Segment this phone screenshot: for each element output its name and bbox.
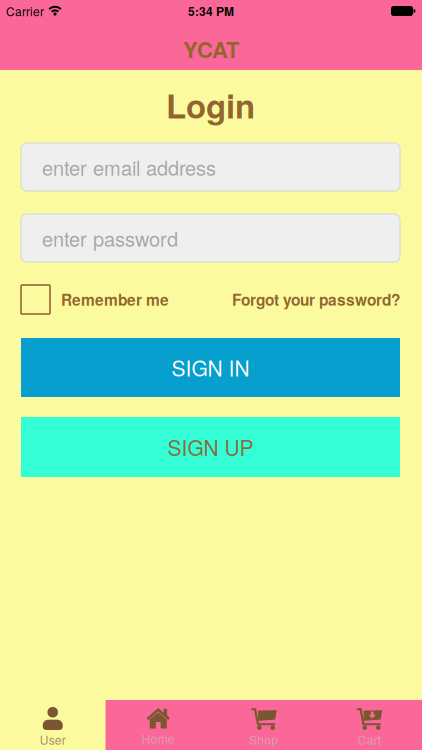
button[interactable]: Shop bbox=[211, 700, 316, 750]
button[interactable]: Home bbox=[105, 700, 211, 750]
button[interactable]: User bbox=[0, 700, 105, 750]
button[interactable]: SIGN UP bbox=[21, 417, 400, 477]
staticText: 5:34 PM bbox=[188, 2, 234, 20]
staticText: enter password bbox=[42, 224, 178, 252]
staticText: Cart bbox=[358, 731, 381, 748]
button[interactable]: Cart bbox=[316, 700, 422, 750]
staticText: Remember me bbox=[61, 288, 169, 311]
staticText: SIGN IN bbox=[171, 352, 249, 383]
staticText: Forgot your password? bbox=[232, 288, 400, 311]
staticText: SIGN UP bbox=[167, 432, 253, 462]
button[interactable]: Remember me bbox=[21, 285, 169, 314]
staticText: YCAT bbox=[183, 33, 239, 65]
staticText: Carrier bbox=[6, 2, 44, 20]
staticText: Home bbox=[142, 730, 175, 747]
staticText: enter email address bbox=[42, 153, 216, 181]
staticText: Shop bbox=[249, 731, 278, 748]
button[interactable]: SIGN IN bbox=[21, 338, 400, 397]
button[interactable]: Forgot your password? bbox=[232, 288, 400, 311]
staticText: Login bbox=[166, 81, 255, 129]
staticText: User bbox=[40, 731, 66, 748]
